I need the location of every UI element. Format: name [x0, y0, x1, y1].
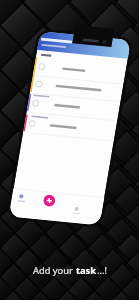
- staticText: Add your: [33, 264, 76, 277]
- staticText: task: [76, 264, 97, 277]
- staticText: ...!: [97, 264, 107, 277]
